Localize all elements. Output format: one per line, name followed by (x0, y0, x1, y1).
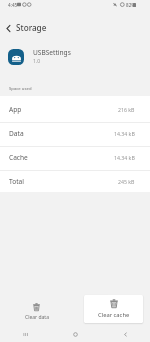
staticText: Cache (9, 153, 28, 162)
button[interactable]: Navigate up (0, 20, 17, 37)
staticText: Clear data (25, 314, 49, 321)
staticText: App (9, 105, 22, 114)
staticText: USBSettings (33, 48, 71, 57)
button[interactable]: Total (0, 171, 150, 192)
button[interactable]: Clear cache (84, 295, 143, 323)
staticText: Total (9, 177, 24, 186)
staticText: 1.0 (33, 58, 41, 65)
button[interactable]: Data (0, 123, 150, 147)
staticText: 4:45 (8, 2, 18, 8)
staticText: 82% (126, 2, 136, 8)
staticText: 14.34 kB (114, 130, 135, 137)
button[interactable]: Home (50, 326, 100, 342)
staticText: Space used (9, 86, 32, 92)
button[interactable]: Clear data (13, 303, 60, 323)
staticText: Storage (16, 22, 47, 33)
button[interactable]: App (0, 99, 150, 123)
staticText: 216 kB (118, 106, 135, 113)
button[interactable]: Recents (0, 326, 50, 342)
button[interactable]: Cache (0, 147, 150, 171)
staticText: Clear cache (98, 311, 130, 319)
staticText: 245 kB (118, 178, 135, 185)
staticText: 14.34 kB (114, 154, 135, 161)
button[interactable]: Back (100, 326, 150, 342)
staticText: Data (9, 129, 24, 138)
